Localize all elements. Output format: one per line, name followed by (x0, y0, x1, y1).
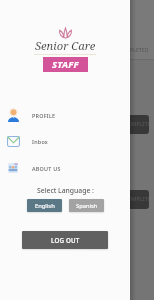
button[interactable]: Inbox (0, 131, 130, 151)
other: Inbox (6, 134, 20, 148)
button[interactable]: STAFF (43, 57, 88, 72)
staticText: COMPLETED (118, 46, 149, 53)
staticText: Inbox (32, 138, 48, 145)
staticText: LOG OUT (51, 236, 80, 244)
button[interactable]: Spanish (69, 199, 104, 212)
staticText: Senior Care (35, 38, 96, 53)
other: About us (6, 161, 20, 175)
staticText: Select Language : (37, 186, 94, 195)
button[interactable]: English (27, 199, 62, 212)
other: Profile (6, 108, 20, 122)
staticText: COMPLETED (125, 196, 149, 203)
staticText: STAFF (52, 58, 79, 71)
staticText: ASSIGNED (74, 46, 100, 53)
staticText: PROFILE (32, 112, 56, 119)
button[interactable]: LOG OUT (22, 231, 108, 249)
staticText: COMPLETED (125, 121, 149, 128)
button[interactable]: About us (0, 158, 130, 178)
staticText: ABOUT US (32, 165, 61, 172)
staticText: English (35, 202, 55, 210)
staticText: Spanish (76, 202, 98, 210)
button[interactable]: Profile (0, 105, 130, 125)
